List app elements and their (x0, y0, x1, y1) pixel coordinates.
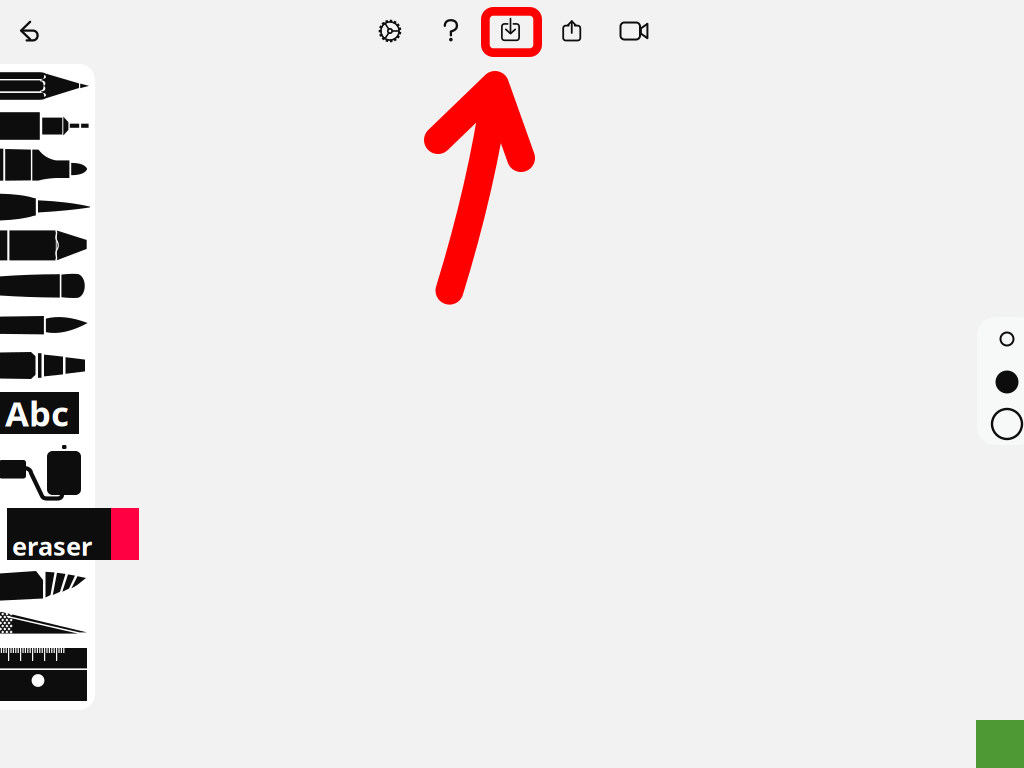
button[interactable]: Pencil (0, 67, 95, 105)
button[interactable]: Blending stump (0, 606, 95, 642)
button[interactable]: Pen (0, 107, 95, 145)
button[interactable]: Undo (4, 5, 58, 57)
button[interactable]: Large brush size (983, 403, 1024, 445)
button[interactable]: Knife (0, 566, 95, 607)
button[interactable]: Calligraphy pen (0, 185, 95, 223)
staticText: Abc (5, 390, 69, 436)
button[interactable]: Share (546, 5, 598, 57)
button[interactable]: Paint roller (0, 437, 95, 505)
button[interactable]: Flat marker (0, 265, 95, 303)
button[interactable]: Small brush size (983, 317, 1024, 361)
button[interactable]: Wedge marker (0, 225, 95, 266)
button[interactable]: Save (481, 7, 542, 57)
button[interactable]: Marker (0, 143, 95, 186)
button[interactable]: Medium brush size (983, 361, 1024, 403)
button[interactable]: Crayon (0, 347, 95, 384)
button[interactable]: Eraser, selected (7, 508, 139, 560)
button[interactable]: Ruler (0, 643, 95, 706)
button[interactable]: Brush (0, 305, 95, 340)
button[interactable]: Help (425, 5, 477, 57)
button[interactable]: Settings (364, 5, 416, 57)
button[interactable]: Text tool (0, 392, 79, 434)
button[interactable]: Record video (608, 5, 660, 57)
staticText: eraser (12, 529, 92, 563)
